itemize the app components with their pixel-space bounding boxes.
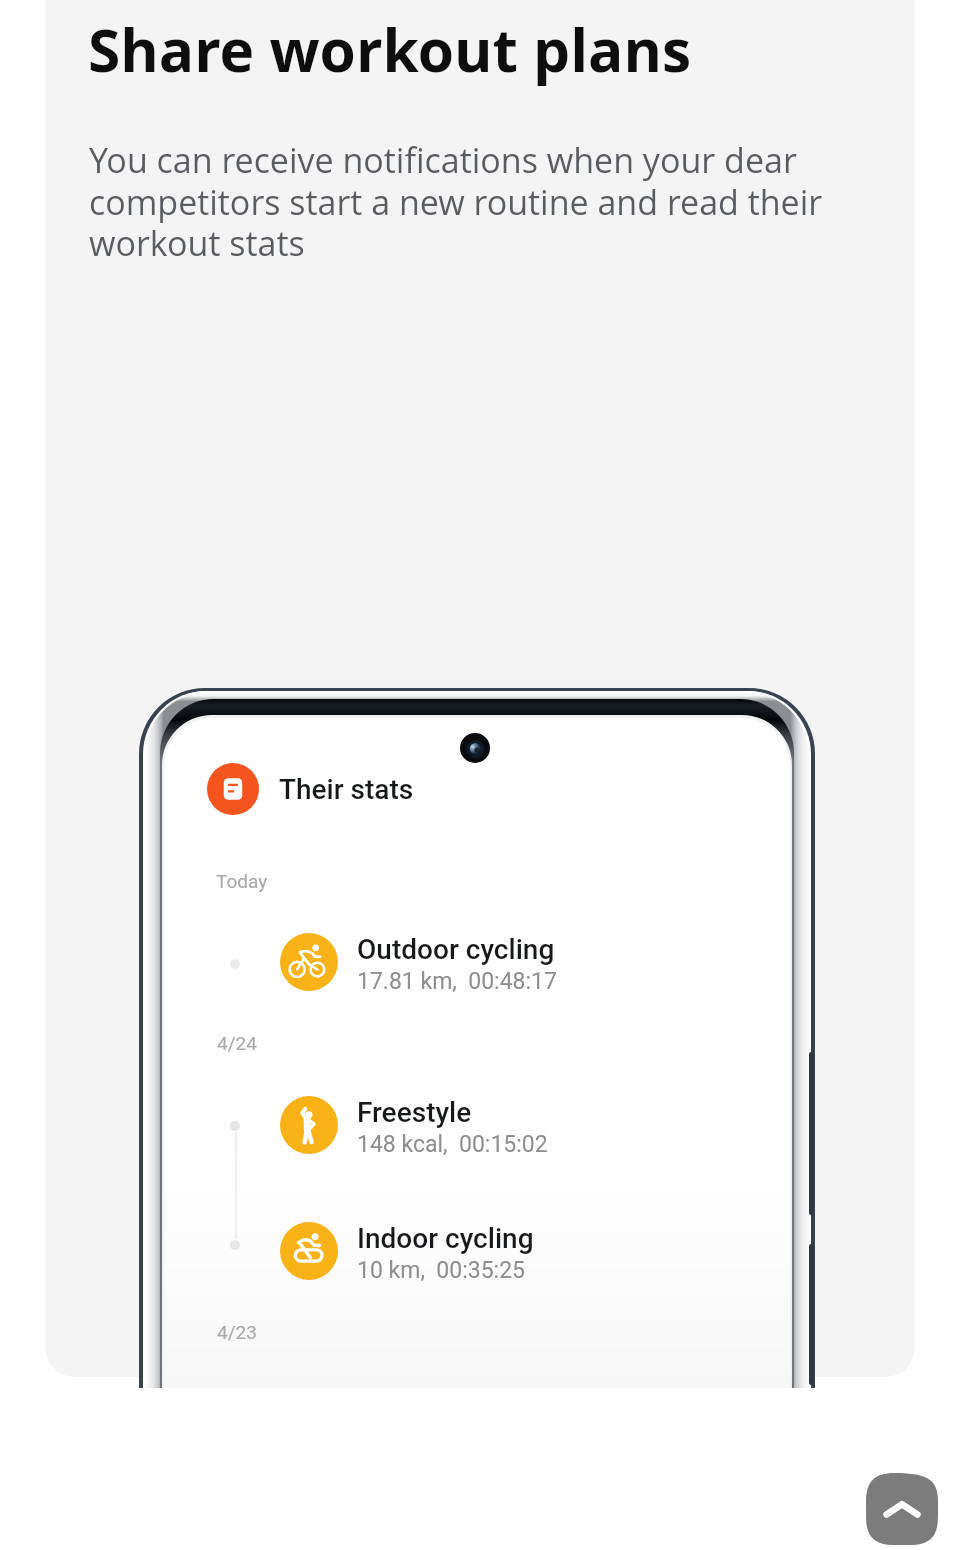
staticText: 17.81 km, 00:48:17 [357,968,557,995]
staticText: Outdoor cycling [357,933,555,966]
staticText: Share workout plans [88,9,692,89]
button[interactable]: Scroll to top [866,1473,938,1545]
button[interactable]: Freestyle [357,1090,548,1123]
staticText: Indoor cycling [357,1222,534,1255]
staticText: Today [216,870,268,892]
staticText: 10 km, 00:35:25 [357,1257,526,1284]
button[interactable]: Their stats [207,763,414,815]
button[interactable]: Indoor cycling [357,1216,534,1249]
staticText: Their stats [279,773,414,806]
staticText: You can receive notifications when your … [89,137,841,266]
button[interactable]: Outdoor cycling [357,927,557,960]
staticText: 148 kcal, 00:15:02 [357,1131,548,1158]
staticText: Freestyle [357,1096,472,1129]
staticText: 4/24 [217,1032,257,1054]
staticText: 4/23 [217,1321,257,1343]
